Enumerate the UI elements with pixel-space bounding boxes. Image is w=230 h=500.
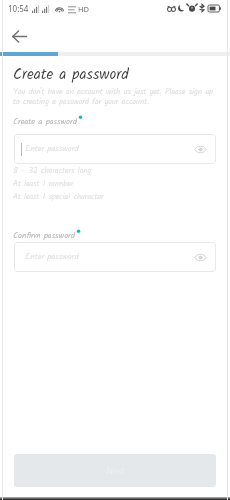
button[interactable]: Show password [192,141,208,157]
staticText: Enter password [25,142,79,156]
staticText: Confirm password [13,229,75,243]
staticText: 10:54 [8,3,29,14]
button[interactable]: Show password [192,249,208,265]
button[interactable]: Enter password [14,242,216,272]
button[interactable]: Enter password [14,134,216,164]
staticText: 8 - 32 characters long At least 1 number… [13,164,104,203]
staticText: You don't have an account with us just y… [13,85,216,109]
staticText: HD [78,4,90,14]
staticText: Create a password [13,63,129,87]
staticText: Enter password [25,250,79,264]
button[interactable]: Back [6,23,33,50]
staticText: Create a password [13,115,77,129]
